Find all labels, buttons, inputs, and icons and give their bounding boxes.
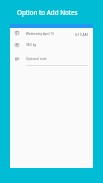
button[interactable]: Date	[10, 28, 93, 40]
staticText: 6:15 AM	[75, 32, 88, 37]
staticText: Optional note	[26, 57, 47, 61]
button[interactable]: Weight	[10, 40, 93, 52]
staticText: Wednesday April 15	[26, 32, 54, 36]
staticText: 98.0 kg	[26, 43, 37, 47]
other: Weight	[15, 43, 19, 47]
staticText: Option to Add Notes	[17, 8, 78, 17]
other: Note	[15, 57, 19, 61]
other: Date	[15, 31, 19, 35]
button[interactable]: Note	[10, 52, 93, 68]
